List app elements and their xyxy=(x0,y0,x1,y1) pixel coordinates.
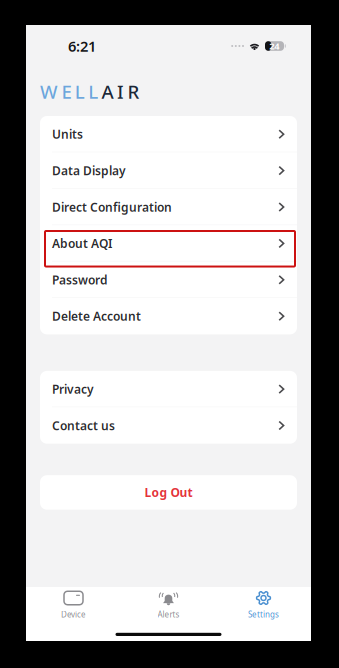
staticText: Settings xyxy=(248,609,279,620)
button[interactable]: Log Out xyxy=(40,475,297,510)
staticText: Password xyxy=(52,272,108,288)
staticText: Direct Configuration xyxy=(52,199,172,215)
staticText: About AQI xyxy=(52,235,112,251)
staticText: 24 xyxy=(269,40,279,52)
button[interactable]: Alerts xyxy=(121,590,216,620)
staticText: Privacy xyxy=(52,381,94,397)
button[interactable]: Contact us xyxy=(40,407,297,444)
button[interactable]: About AQI xyxy=(40,225,297,262)
staticText: 6:21 xyxy=(68,36,96,56)
staticText: R xyxy=(127,79,139,104)
button[interactable]: Device xyxy=(26,590,121,620)
button[interactable]: Delete Account xyxy=(40,298,297,334)
staticText: Log Out xyxy=(144,484,192,500)
staticText: A xyxy=(102,79,114,104)
button[interactable]: Units xyxy=(40,116,297,152)
button[interactable]: Password xyxy=(40,262,297,298)
button[interactable]: Privacy xyxy=(40,371,297,407)
staticText: W xyxy=(40,79,58,104)
staticText: I xyxy=(117,79,124,104)
button[interactable]: Data Display xyxy=(40,152,297,189)
staticText: Units xyxy=(52,126,83,142)
staticText: L xyxy=(75,79,85,104)
button[interactable]: Settings xyxy=(216,590,311,620)
staticText: Contact us xyxy=(52,417,115,433)
staticText: Delete Account xyxy=(52,308,141,324)
staticText: L xyxy=(88,79,98,104)
staticText: E xyxy=(61,79,71,104)
staticText: Data Display xyxy=(52,163,126,178)
button[interactable]: Direct Configuration xyxy=(40,189,297,225)
staticText: Device xyxy=(61,609,86,620)
staticText: Alerts xyxy=(157,609,179,620)
